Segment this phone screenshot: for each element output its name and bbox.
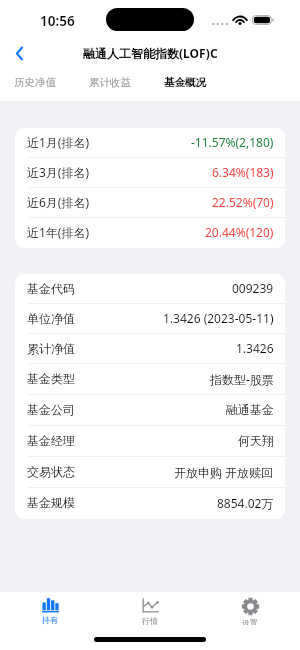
button[interactable]: 近6月(排名) [15, 188, 285, 218]
staticText: 指数型-股票 [210, 371, 274, 387]
button[interactable]: 近1年(排名) [15, 218, 285, 248]
button[interactable]: 基金经理 [15, 426, 285, 457]
staticText: 何天翔 [238, 433, 274, 448]
staticText: 6.34%(183) [212, 164, 274, 180]
staticText: 近3月(排名) [27, 164, 90, 180]
staticText: 累计净值 [27, 341, 75, 356]
staticText: 009239 [232, 280, 274, 296]
staticText: 20.44%(120) [205, 224, 274, 240]
button[interactable]: 近1月(排名) [15, 128, 285, 158]
staticText: 10:56 [40, 12, 75, 30]
staticText: 开放申购 开放赎回 [174, 464, 274, 480]
staticText: 1.3426 (2023-05-11) [163, 310, 274, 326]
button[interactable]: 行情 [100, 592, 200, 625]
staticText: 持有 [42, 615, 58, 625]
staticText: -11.57%(2,180) [191, 134, 274, 150]
staticText: 基金类型 [27, 371, 75, 386]
button[interactable]: 基金概况 [161, 68, 209, 101]
staticText: 1.3426 [236, 340, 274, 356]
staticText: 设置 [242, 618, 258, 625]
button[interactable]: 单位净值 [15, 304, 285, 334]
staticText: 近1年(排名) [27, 224, 90, 240]
staticText: 基金代码 [27, 281, 75, 296]
button[interactable]: 累计收益 [86, 68, 134, 101]
staticText: 历史净值 [14, 76, 56, 89]
button[interactable]: 基金代码 [15, 274, 285, 304]
button[interactable]: 持有 [0, 592, 100, 625]
button[interactable]: 近3月(排名) [15, 158, 285, 188]
staticText: 22.52%(70) [212, 194, 274, 210]
staticText: 融通人工智能指数(LOF)C [83, 45, 218, 61]
staticText: 近1月(排名) [27, 134, 90, 150]
button[interactable]: 设置 [200, 592, 300, 625]
staticText: 交易状态 [27, 464, 75, 479]
button[interactable]: 基金规模 [15, 488, 285, 519]
staticText: 融通基金 [226, 402, 274, 417]
button[interactable]: 基金类型 [15, 364, 285, 395]
staticText: 8854.02万 [217, 495, 274, 511]
staticText: 基金经理 [27, 433, 75, 448]
staticText: 单位净值 [27, 311, 75, 326]
staticText: 近6月(排名) [27, 194, 90, 210]
staticText: 行情 [142, 616, 158, 625]
staticText: 基金公司 [27, 402, 75, 417]
button[interactable]: Back [6, 38, 32, 68]
staticText: 基金概况 [164, 76, 206, 89]
button[interactable]: 基金公司 [15, 395, 285, 426]
staticText: 累计收益 [89, 76, 131, 89]
button[interactable]: 交易状态 [15, 457, 285, 488]
button[interactable]: 历史净值 [11, 68, 59, 101]
staticText: 基金规模 [27, 495, 75, 510]
button[interactable]: 累计净值 [15, 334, 285, 364]
